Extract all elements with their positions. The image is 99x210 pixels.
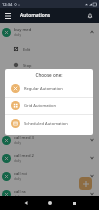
- staticText: Automations: [20, 12, 51, 19]
- staticText: call roi: [14, 171, 27, 177]
- staticText: Regular Automation: [24, 86, 63, 92]
- staticText: daily: [14, 177, 22, 181]
- button[interactable]: Notifications: [82, 8, 97, 23]
- button[interactable]: Recent apps: [67, 196, 81, 210]
- staticText: 12:34: [2, 2, 13, 7]
- staticText: Grid Automation: [24, 103, 57, 109]
- staticText: call med 2: [14, 153, 34, 159]
- staticText: daily: [14, 141, 22, 145]
- staticText: Choose one:: [35, 72, 63, 78]
- button[interactable]: call roi: [0, 167, 99, 185]
- button[interactable]: Scheduled Automation: [5, 115, 93, 132]
- button[interactable]: call med 2: [0, 149, 99, 167]
- button[interactable]: call ra: [0, 185, 99, 203]
- staticText: call med 3: [14, 135, 34, 141]
- button[interactable]: Regular Automation: [5, 80, 93, 97]
- staticText: Scheduled Automation: [24, 121, 68, 127]
- button[interactable]: Open navigation menu: [0, 8, 15, 23]
- button[interactable]: Add automation: [79, 177, 92, 190]
- staticText: buy med: [14, 27, 32, 33]
- button[interactable]: Home: [43, 196, 57, 210]
- staticText: call ra: [14, 189, 26, 195]
- staticText: daily: [14, 195, 22, 199]
- button[interactable]: buy med: [0, 23, 99, 41]
- button[interactable]: call med 3: [0, 131, 99, 149]
- staticText: daily: [14, 33, 22, 37]
- button[interactable]: Edit: [0, 41, 99, 57]
- button[interactable]: Back: [19, 196, 33, 210]
- button[interactable]: Stop: [0, 57, 99, 73]
- staticText: daily: [14, 159, 22, 163]
- staticText: Edit: [23, 47, 31, 52]
- button[interactable]: Grid Automation: [5, 97, 93, 114]
- staticText: Stop: [23, 63, 32, 68]
